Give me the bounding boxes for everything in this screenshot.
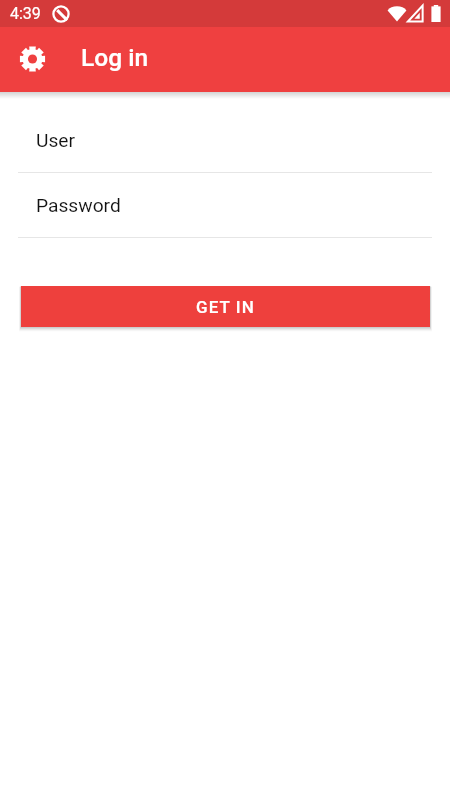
staticText: 4:39 (10, 4, 41, 23)
staticText: GET IN (196, 297, 255, 317)
button[interactable]: Password (0, 173, 450, 237)
other: Do not disturb (52, 5, 70, 23)
button[interactable]: GET IN (21, 286, 430, 327)
staticText: Password (36, 194, 121, 217)
button[interactable]: Settings (8, 35, 56, 83)
staticText: Log in (81, 43, 149, 72)
staticText: User (36, 129, 76, 152)
button[interactable]: User (0, 108, 450, 172)
